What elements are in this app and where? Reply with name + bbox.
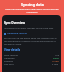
- staticText: Uploading records: [7, 32, 27, 35]
- staticText: 12 left: [52, 60, 59, 63]
- staticText: 2 min: [52, 63, 59, 66]
- button[interactable]: Uploading records: [4, 32, 27, 35]
- staticText: Total records: [4, 54, 18, 57]
- staticText: Keep this window open until every record…: [3, 8, 61, 14]
- staticText: Pending: [4, 60, 13, 63]
- staticText: Uploaded: [4, 57, 15, 60]
- button[interactable]: Total records: [4, 54, 59, 57]
- button[interactable]: Last sync: [4, 63, 59, 66]
- staticText: Done: [53, 57, 59, 60]
- staticText: 128: [55, 54, 59, 57]
- staticText: Sync Overview: [4, 21, 25, 25]
- staticText: View details: [4, 48, 21, 52]
- button[interactable]: Pending: [4, 60, 59, 63]
- button[interactable]: Uploaded: [4, 57, 59, 60]
- staticText: Syncing data: [21, 2, 44, 7]
- staticText: Last sync: [4, 63, 14, 66]
- staticText: Do not turn off the device while the tra…: [4, 37, 59, 46]
- staticText: Uploading your latest changes to the clo…: [4, 27, 54, 30]
